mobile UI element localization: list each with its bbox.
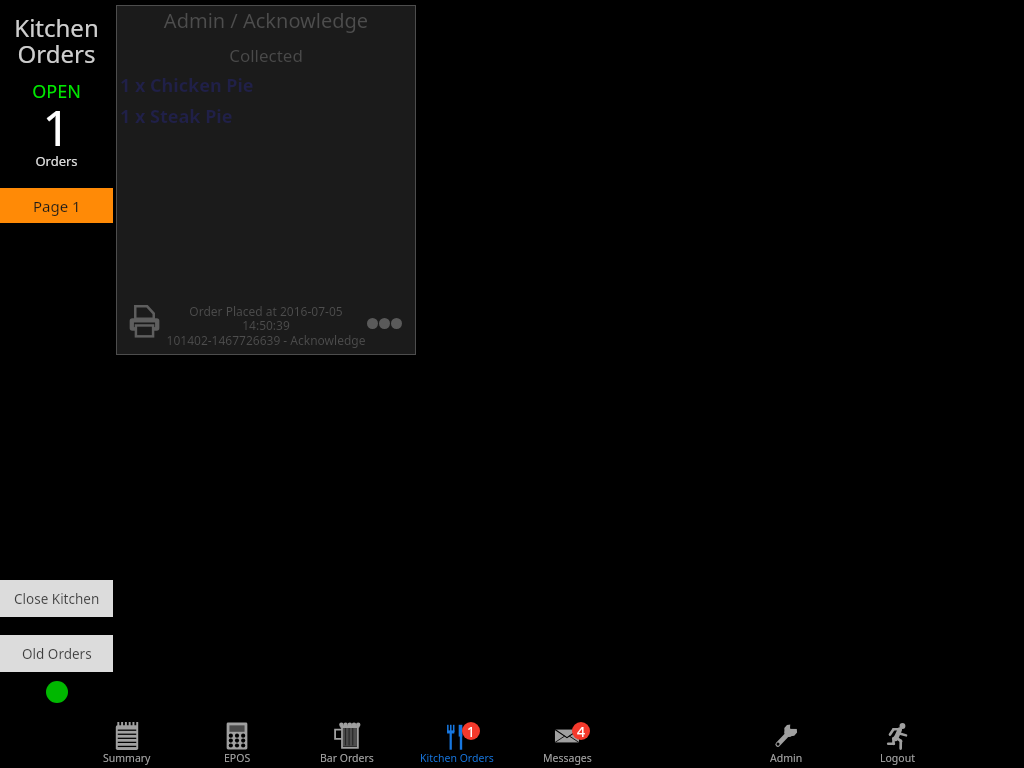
button[interactable]: More options (367, 312, 402, 334)
staticText: OPEN (0, 79, 113, 104)
staticText: Admin (770, 751, 803, 765)
staticText: Old Orders (22, 645, 92, 663)
staticText: Page 1 (33, 196, 81, 216)
button[interactable]: 1 (403, 714, 511, 768)
staticText: Messages (543, 751, 592, 765)
button[interactable]: Print order (128, 305, 161, 338)
staticText: Orders (0, 152, 113, 170)
staticText: Kitchen Orders (0, 11, 113, 70)
staticText: 1 (467, 722, 476, 740)
button[interactable]: Old Orders (0, 635, 113, 672)
button[interactable]: Close Kitchen (0, 580, 113, 617)
staticText: 1 x Chicken Pie (120, 73, 254, 98)
staticText: 1 (0, 94, 113, 161)
staticText: Summary (103, 751, 151, 765)
staticText: EPOS (224, 751, 251, 765)
button[interactable]: Summary (73, 714, 181, 768)
button[interactable]: Page 1 (0, 188, 113, 223)
button[interactable]: 4 (513, 714, 621, 768)
staticText: Collected (116, 44, 416, 67)
button[interactable]: EPOS (183, 714, 291, 768)
staticText: Kitchen Orders (420, 751, 494, 765)
button[interactable]: Admin (732, 714, 840, 768)
staticText: Close Kitchen (14, 590, 100, 608)
staticText: 4 (577, 722, 586, 740)
staticText: Admin / Acknowledge (116, 7, 416, 34)
staticText: Logout (880, 751, 915, 765)
staticText: 1 x Steak Pie (120, 104, 233, 129)
staticText: Bar Orders (320, 751, 374, 765)
button[interactable]: Logout (843, 714, 951, 768)
button[interactable]: Admin / Acknowledge (116, 5, 416, 355)
button[interactable]: Bar Orders (293, 714, 401, 768)
staticText: Order Placed at 2016-07-05 14:50:39 1014… (136, 303, 396, 349)
